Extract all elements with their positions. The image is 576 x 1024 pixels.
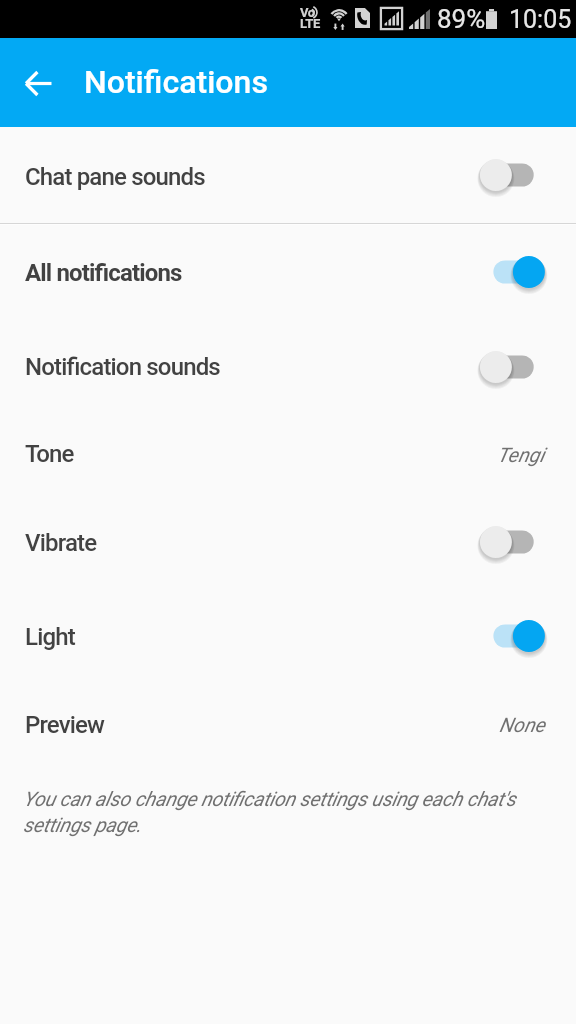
- staticText: Vibrate: [25, 529, 97, 557]
- button[interactable]: Vibrate: [0, 496, 576, 590]
- staticText: You can also change notification setting…: [23, 787, 546, 837]
- staticText: Chat pane sounds: [25, 163, 205, 191]
- staticText: Tengi: [497, 443, 545, 466]
- button[interactable]: Preview: [0, 685, 576, 766]
- staticText: All notifications: [25, 259, 182, 287]
- staticText: Preview: [25, 711, 105, 739]
- staticText: Notifications: [84, 63, 268, 101]
- button[interactable]: Chat pane sounds: [0, 127, 576, 223]
- staticText: LTE: [300, 16, 320, 31]
- staticText: Vo: [300, 5, 315, 20]
- staticText: 10:05: [509, 5, 572, 34]
- button[interactable]: Notification sounds, off: [480, 345, 545, 389]
- staticText: Tone: [25, 440, 74, 468]
- button[interactable]: Vibrate, off: [480, 520, 545, 564]
- staticText: None: [499, 713, 545, 736]
- button[interactable]: Notification sounds: [0, 320, 576, 414]
- button[interactable]: Tone: [0, 414, 576, 496]
- staticText: Light: [25, 623, 75, 651]
- button[interactable]: All notifications: [0, 225, 576, 320]
- button[interactable]: Light, on: [480, 614, 545, 658]
- staticText: 89%: [437, 4, 486, 34]
- staticText: Notification sounds: [25, 353, 220, 381]
- button[interactable]: All notifications, on: [480, 250, 545, 294]
- button[interactable]: Chat pane sounds, off: [480, 153, 545, 197]
- button[interactable]: Light: [0, 590, 576, 685]
- button[interactable]: Back: [14, 59, 62, 107]
